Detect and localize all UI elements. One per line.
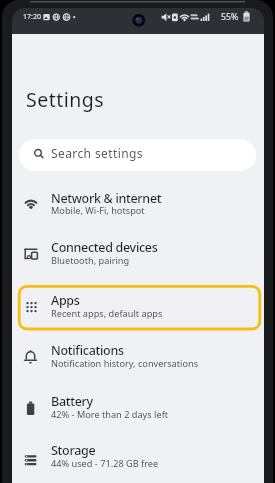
staticText: Storage — [51, 442, 96, 459]
button[interactable] — [12, 431, 264, 483]
button[interactable] — [19, 139, 256, 171]
button[interactable] — [12, 284, 264, 331]
button[interactable] — [12, 228, 264, 280]
staticText: 17:20 — [23, 12, 41, 22]
staticText: Connected devices — [51, 239, 158, 256]
staticText: Notification history, conversations — [51, 357, 199, 370]
staticText: 55% — [221, 11, 239, 23]
button[interactable] — [12, 331, 264, 381]
staticText: 42% - More than 2 days left — [51, 408, 169, 421]
staticText: Notifications — [51, 342, 124, 359]
staticText: Settings — [26, 86, 105, 113]
button[interactable] — [12, 381, 264, 431]
staticText: Apps — [51, 292, 80, 309]
button[interactable] — [12, 178, 264, 228]
staticText: Recent apps, default apps — [51, 307, 163, 320]
staticText: Search settings — [51, 145, 143, 161]
staticText: Mobile, Wi-Fi, hotspot — [51, 204, 145, 217]
staticText: Bluetooth, pairing — [51, 254, 130, 267]
staticText: Battery — [51, 393, 93, 410]
staticText: Network & internet — [51, 190, 162, 207]
staticText: 44% used - 71.28 GB free — [51, 457, 159, 470]
